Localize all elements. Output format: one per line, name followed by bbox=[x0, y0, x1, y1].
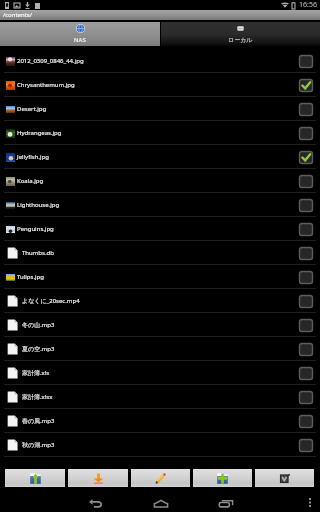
button[interactable]: Lighthouse.jpg bbox=[0, 193, 320, 217]
staticText: Jellyfish.jpg bbox=[17, 153, 49, 161]
button[interactable]: Thumbs.db bbox=[0, 241, 320, 265]
staticText: Penguins.jpg bbox=[17, 225, 54, 233]
button[interactable]: 秋の湖.mp3 bbox=[0, 433, 320, 457]
button[interactable]: 家計簿.xlsx bbox=[0, 385, 320, 409]
button[interactable]: New folder bbox=[193, 469, 252, 487]
staticText: 家計簿.xlsx bbox=[22, 393, 53, 401]
button[interactable]: Select file bbox=[299, 199, 313, 212]
staticText: 春の風.mp3 bbox=[22, 417, 55, 425]
button[interactable]: Select file bbox=[299, 175, 313, 188]
staticText: NAS bbox=[74, 36, 86, 44]
button[interactable]: Select file bbox=[299, 391, 313, 404]
button[interactable]: Select file bbox=[299, 415, 313, 428]
staticText: Koala.jpg bbox=[17, 177, 44, 185]
staticText: Tulips.jpg bbox=[17, 273, 44, 281]
staticText: 家計簿.xls bbox=[22, 369, 50, 377]
button[interactable]: 2012_0309_0846_44.jpg bbox=[0, 49, 320, 73]
button[interactable]: Koala.jpg bbox=[0, 169, 320, 193]
staticText: Chrysanthemum.jpg bbox=[17, 81, 75, 89]
button[interactable]: Delete bbox=[255, 469, 314, 487]
button[interactable]: Select file bbox=[299, 271, 313, 284]
button[interactable]: Back bbox=[78, 493, 113, 512]
staticText: 夏の空.mp3 bbox=[22, 345, 55, 353]
button[interactable]: More options bbox=[300, 492, 320, 512]
button[interactable]: Tulips.jpg bbox=[0, 265, 320, 289]
button[interactable]: Home bbox=[143, 493, 178, 512]
button[interactable]: 冬の山.mp3 bbox=[0, 313, 320, 337]
button[interactable]: Move to folder bbox=[5, 469, 65, 487]
staticText: 冬の山.mp3 bbox=[22, 321, 55, 329]
staticText: 秋の湖.mp3 bbox=[22, 441, 55, 449]
button[interactable]: Penguins.jpg bbox=[0, 217, 320, 241]
button[interactable]: 家計簿.xls bbox=[0, 361, 320, 385]
button[interactable]: Select file bbox=[299, 295, 313, 308]
button[interactable]: よなくに_20sec.mp4 bbox=[0, 289, 320, 313]
button[interactable]: Select file bbox=[299, 127, 313, 140]
button[interactable]: Select file bbox=[299, 247, 313, 260]
staticText: Desert.jpg bbox=[17, 105, 47, 113]
button[interactable]: Select file bbox=[299, 79, 313, 92]
button[interactable]: ローカル bbox=[161, 22, 320, 46]
button[interactable]: Rename bbox=[131, 469, 190, 487]
button[interactable]: Download bbox=[68, 469, 128, 487]
button[interactable]: 春の風.mp3 bbox=[0, 409, 320, 433]
button[interactable]: Select file bbox=[299, 223, 313, 236]
button[interactable]: Select file bbox=[299, 367, 313, 380]
button[interactable]: Chrysanthemum.jpg bbox=[0, 73, 320, 97]
staticText: Lighthouse.jpg bbox=[17, 201, 60, 209]
button[interactable]: Select file bbox=[299, 55, 313, 68]
button[interactable]: Select file bbox=[299, 439, 313, 452]
staticText: 2012_0309_0846_44.jpg bbox=[17, 57, 84, 65]
button[interactable]: Hydrangeas.jpg bbox=[0, 121, 320, 145]
button[interactable]: Desert.jpg bbox=[0, 97, 320, 121]
staticText: Hydrangeas.jpg bbox=[17, 129, 62, 137]
button[interactable]: Select file bbox=[299, 103, 313, 116]
staticText: /contents/ bbox=[3, 11, 32, 19]
button[interactable]: Jellyfish.jpg bbox=[0, 145, 320, 169]
button[interactable]: Recent apps bbox=[208, 493, 243, 512]
staticText: よなくに_20sec.mp4 bbox=[22, 297, 80, 305]
staticText: ローカル bbox=[228, 36, 253, 44]
button[interactable]: NAS bbox=[0, 22, 160, 46]
staticText: 16:56 bbox=[299, 0, 317, 10]
button[interactable]: Select file bbox=[299, 343, 313, 356]
button[interactable]: Select file bbox=[299, 319, 313, 332]
button[interactable]: Select file bbox=[299, 151, 313, 164]
staticText: Thumbs.db bbox=[22, 249, 54, 257]
button[interactable]: 夏の空.mp3 bbox=[0, 337, 320, 361]
